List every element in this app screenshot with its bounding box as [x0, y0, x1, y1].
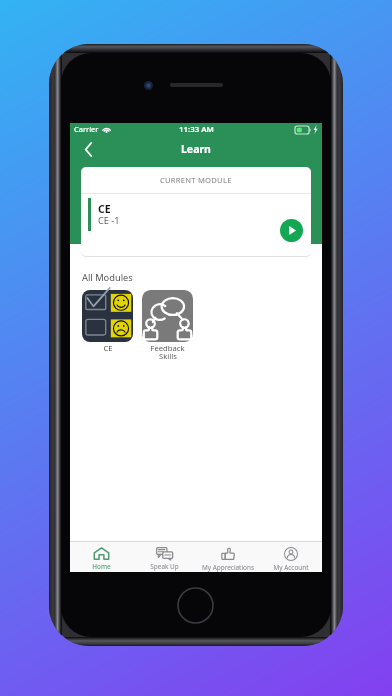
staticText: CURRENT MODULE — [160, 175, 232, 185]
button[interactable]: Feedback — [142, 290, 193, 363]
button[interactable]: Play module — [280, 219, 303, 242]
staticText: Speak Up — [150, 562, 179, 571]
staticText: My Appreciations — [202, 563, 254, 572]
staticText: Skills — [159, 351, 177, 361]
staticText: All Modules — [82, 271, 133, 284]
staticText: Feedback — [150, 343, 185, 353]
staticText: CE — [98, 202, 111, 216]
staticText: CE — [103, 343, 113, 353]
button[interactable]: Speak Up — [133, 542, 196, 572]
staticText: Learn — [181, 142, 211, 156]
button[interactable]: My Appreciations — [196, 542, 259, 572]
button[interactable]: CURRENT MODULE — [81, 167, 311, 256]
staticText: CE -1 — [98, 214, 120, 227]
button[interactable]: Back — [74, 137, 102, 161]
staticText: 11:33 AM — [179, 124, 214, 135]
button[interactable]: My Account — [259, 542, 322, 572]
button[interactable]: CE — [82, 290, 133, 353]
staticText: Carrier — [74, 124, 99, 134]
staticText: My Account — [273, 563, 309, 572]
button[interactable]: Home — [70, 542, 133, 572]
staticText: Home — [92, 562, 111, 571]
